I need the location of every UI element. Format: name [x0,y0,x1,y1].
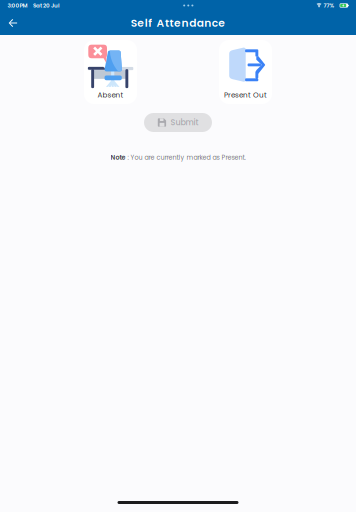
staticText: 3:00PM [7,2,27,9]
staticText: Absent [97,90,123,100]
staticText: Self Attendance [131,15,225,30]
button[interactable]: Present Out [219,40,272,104]
staticText: Sat 20 Jul [33,2,60,9]
staticText: Note [110,153,125,162]
staticText: Submit [170,117,198,128]
button[interactable]: Submit [144,113,212,132]
button[interactable]: Back [4,11,22,35]
staticText: Present Out [224,90,267,100]
staticText: 77% [324,2,335,9]
staticText: : You are currently marked as Present. [125,153,245,162]
button[interactable]: Absent [84,40,137,104]
